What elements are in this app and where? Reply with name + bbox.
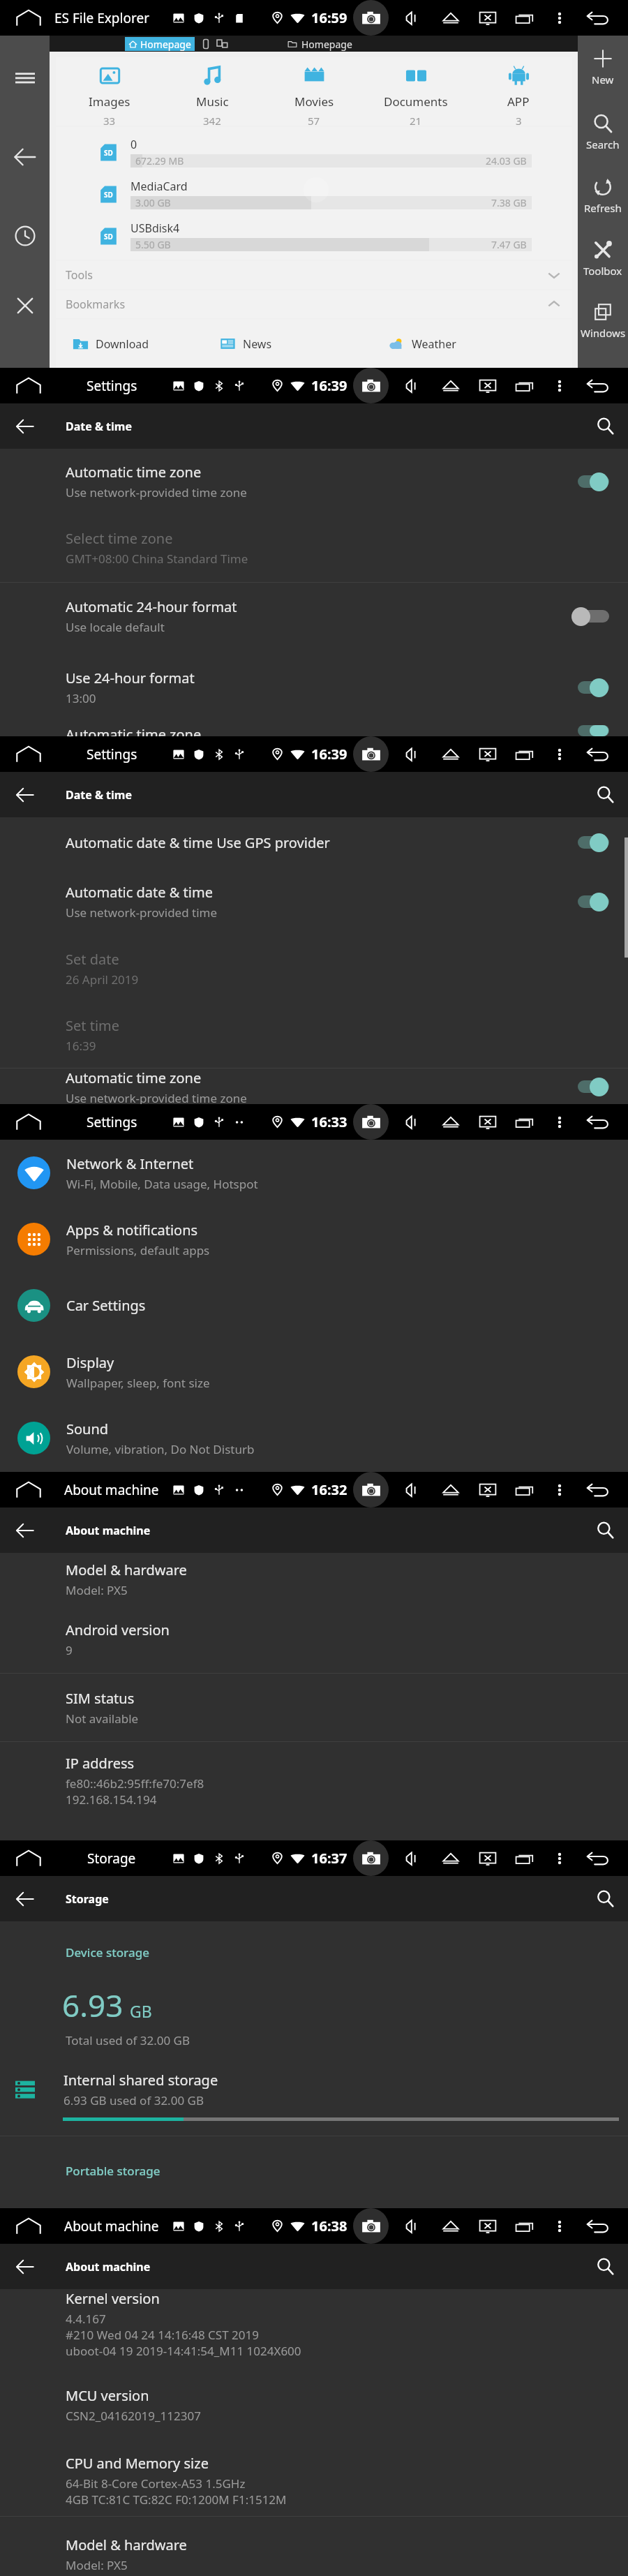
button[interactable]: Screenshot bbox=[353, 1472, 389, 1507]
button[interactable]: Back bbox=[0, 403, 50, 449]
button[interactable]: Search bbox=[578, 113, 628, 151]
button[interactable]: Network & Internet bbox=[0, 1140, 628, 1206]
button[interactable]: Menu bbox=[0, 60, 50, 95]
button[interactable]: Recents bbox=[513, 1110, 538, 1135]
button[interactable]: Eject bbox=[438, 1477, 463, 1503]
button[interactable]: Display bbox=[0, 1339, 628, 1405]
button[interactable]: Screenshot bbox=[353, 368, 389, 403]
button[interactable]: Screenshot bbox=[353, 736, 389, 772]
button[interactable]: Search bbox=[582, 2244, 628, 2289]
button[interactable]: Apps & notifications bbox=[0, 1206, 628, 1272]
button[interactable]: Set time bbox=[0, 1002, 628, 1068]
button[interactable]: Movies bbox=[266, 64, 362, 126]
button[interactable]: Use 24-hour format bbox=[0, 650, 628, 725]
button[interactable]: Screenshot bbox=[353, 0, 389, 36]
button[interactable]: Recent bbox=[0, 218, 50, 254]
button[interactable]: IP address bbox=[0, 1742, 628, 1819]
button[interactable]: Back bbox=[583, 740, 612, 769]
button[interactable]: Bookmarks bbox=[56, 290, 572, 318]
button[interactable]: Search bbox=[582, 1507, 628, 1553]
button[interactable]: Screen off bbox=[475, 6, 500, 31]
button[interactable]: MCU version bbox=[0, 2386, 628, 2435]
button[interactable]: Volume bbox=[400, 742, 425, 767]
button[interactable]: Toggle bbox=[571, 725, 622, 736]
button[interactable]: More options bbox=[548, 2214, 571, 2238]
button[interactable]: SIM status bbox=[0, 1674, 628, 1741]
button[interactable]: Screen off bbox=[475, 1477, 500, 1503]
button[interactable]: Recents bbox=[513, 1846, 538, 1871]
button[interactable]: Recents bbox=[513, 742, 538, 767]
button[interactable]: Weather bbox=[389, 336, 572, 352]
button[interactable]: Back bbox=[0, 772, 50, 817]
button[interactable]: Screen off bbox=[475, 742, 500, 767]
button[interactable]: APP bbox=[470, 64, 567, 126]
button[interactable]: Toolbox bbox=[578, 239, 628, 278]
button[interactable]: SD bbox=[56, 215, 572, 257]
button[interactable]: Back bbox=[0, 1507, 50, 1553]
button[interactable]: Volume bbox=[400, 2214, 425, 2239]
button[interactable]: Back bbox=[0, 139, 50, 175]
button[interactable]: Screen off bbox=[475, 1110, 500, 1135]
button[interactable]: Search bbox=[582, 403, 628, 449]
button[interactable]: Toggle bbox=[571, 884, 622, 919]
button[interactable]: Portable storage bbox=[66, 2163, 160, 2179]
button[interactable]: More options bbox=[548, 6, 571, 30]
button[interactable]: Eject bbox=[438, 742, 463, 767]
button[interactable]: Back bbox=[0, 2244, 50, 2289]
button[interactable]: SD bbox=[56, 173, 572, 215]
button[interactable]: Automatic date & time Use GPS provider bbox=[0, 817, 628, 868]
button[interactable]: Eject bbox=[438, 2214, 463, 2239]
button[interactable]: Toggle bbox=[571, 670, 622, 705]
button[interactable]: Volume bbox=[400, 373, 425, 399]
button[interactable]: Screenshot bbox=[353, 1840, 389, 1876]
button[interactable]: Back bbox=[583, 371, 612, 401]
button[interactable]: Sound bbox=[0, 1405, 628, 1471]
button[interactable]: Android version bbox=[0, 1606, 628, 1673]
button[interactable]: Screenshot bbox=[353, 1104, 389, 1140]
button[interactable]: Volume bbox=[400, 1110, 425, 1135]
button[interactable]: Recents bbox=[513, 1477, 538, 1503]
button[interactable]: Back bbox=[583, 2212, 612, 2241]
button[interactable]: Documents bbox=[368, 64, 464, 126]
button[interactable]: Back bbox=[583, 1108, 612, 1137]
button[interactable]: Select time zone bbox=[0, 514, 628, 582]
button[interactable]: Screen off bbox=[475, 2214, 500, 2239]
button[interactable]: Eject bbox=[438, 6, 463, 31]
button[interactable]: Search bbox=[582, 1876, 628, 1921]
button[interactable]: CPU and Memory size bbox=[0, 2454, 628, 2514]
button[interactable]: More options bbox=[548, 1478, 571, 1502]
button[interactable]: New bbox=[578, 48, 628, 87]
button[interactable]: SD bbox=[56, 131, 572, 173]
button[interactable]: Automatic 24-hour format bbox=[0, 583, 628, 650]
button[interactable]: More options bbox=[548, 1847, 571, 1870]
button[interactable]: Back bbox=[583, 1844, 612, 1873]
button[interactable]: Screen off bbox=[475, 1846, 500, 1871]
button[interactable]: Set date bbox=[0, 936, 628, 1002]
button[interactable]: News bbox=[220, 336, 389, 352]
button[interactable]: More options bbox=[548, 1110, 571, 1134]
button[interactable]: Automatic time zone bbox=[0, 449, 628, 514]
button[interactable]: Download bbox=[73, 336, 220, 352]
button[interactable]: Automatic time zone bbox=[0, 725, 628, 736]
button[interactable]: Eject bbox=[438, 373, 463, 399]
button[interactable]: Back bbox=[583, 1475, 612, 1505]
button[interactable]: Car Settings bbox=[0, 1272, 628, 1339]
button[interactable]: Screenshot bbox=[353, 2208, 389, 2244]
button[interactable]: More options bbox=[548, 743, 571, 766]
button[interactable]: Music bbox=[164, 64, 260, 126]
button[interactable]: Eject bbox=[438, 1110, 463, 1135]
button[interactable]: Model & hardware bbox=[0, 1553, 628, 1606]
button[interactable]: Volume bbox=[400, 1477, 425, 1503]
button[interactable]: More options bbox=[548, 374, 571, 398]
button[interactable]: Close bbox=[0, 288, 50, 324]
button[interactable]: Images bbox=[61, 64, 158, 126]
button[interactable]: Back bbox=[583, 3, 612, 33]
button[interactable]: Toggle bbox=[571, 599, 622, 634]
button[interactable]: Tools bbox=[56, 261, 572, 289]
button[interactable]: Volume bbox=[400, 1846, 425, 1871]
button[interactable]: Search bbox=[582, 772, 628, 817]
button[interactable]: Eject bbox=[438, 1846, 463, 1871]
button[interactable]: Toggle bbox=[571, 1069, 622, 1104]
button[interactable]: Refresh bbox=[578, 177, 628, 215]
button[interactable]: Recents bbox=[513, 373, 538, 399]
